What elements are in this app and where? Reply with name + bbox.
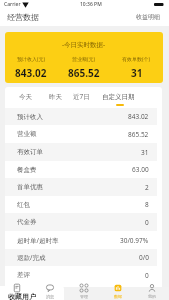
staticText: 首页 (13, 294, 21, 299)
button[interactable]: 代金券 (5, 213, 157, 231)
button[interactable]: 餐盒费 (5, 161, 157, 178)
staticText: 0 (145, 271, 149, 280)
staticText: 预计收入 (17, 113, 43, 121)
staticText: 843.02 (15, 66, 47, 80)
staticText: 红包 (17, 201, 30, 209)
staticText: 0/0 (139, 253, 149, 262)
button[interactable]: 首页 (0, 283, 33, 300)
staticText: 收益明细 (136, 13, 160, 21)
staticText: 63.00 (132, 165, 149, 174)
staticText: 近7日 (73, 92, 90, 101)
staticText: 有效单数(个) (122, 56, 151, 63)
staticText: 管理 (80, 294, 88, 299)
staticText: Carrier (4, 1, 21, 8)
staticText: 我的 (148, 294, 156, 299)
button[interactable]: 收益明细 (136, 13, 160, 21)
button[interactable]: 有效订单 (5, 143, 157, 161)
staticText: 退款/完成 (17, 253, 46, 262)
staticText: 数据 (114, 294, 122, 299)
button[interactable]: 昨天 (43, 87, 81, 108)
button[interactable]: 我的 (135, 283, 169, 300)
staticText: 31 (141, 148, 149, 157)
staticText: -今日实时数据- (62, 40, 106, 49)
button[interactable]: 管理 (67, 283, 101, 300)
staticText: 首单优惠 (17, 183, 43, 191)
staticText: 代金券 (17, 218, 37, 226)
staticText: 30/0.97% (120, 236, 149, 245)
staticText: 有效订单 (17, 148, 43, 156)
staticText: 经营数据 (7, 12, 39, 22)
button[interactable]: 预计收入 (5, 108, 157, 125)
staticText: 营业额(元) (72, 56, 96, 63)
staticText: 收藏用户 (8, 292, 36, 300)
staticText: 自定义日期 (102, 93, 135, 101)
staticText: 昨天 (49, 93, 62, 101)
button[interactable]: 首单优惠 (5, 178, 157, 196)
staticText: 差评 (17, 271, 30, 279)
button[interactable]: 近7日 (81, 87, 119, 108)
staticText: 营业额 (17, 130, 37, 138)
button[interactable]: 差评 (5, 266, 157, 284)
button[interactable]: 营业额 (5, 125, 157, 143)
staticText: 餐盒费 (17, 166, 37, 174)
staticText: 超时单/超时率 (17, 236, 59, 245)
staticText: 今天 (19, 93, 32, 101)
button[interactable]: 消息 (33, 283, 67, 300)
staticText: 865.52 (128, 130, 149, 139)
button[interactable]: 超时单/超时率 (5, 231, 157, 249)
staticText: 843.02 (128, 112, 149, 121)
staticText: 865.52 (68, 66, 100, 80)
staticText: 消息 (46, 294, 54, 299)
staticText: 31 (131, 66, 143, 80)
button[interactable]: 数据 (101, 283, 135, 300)
staticText: 8 (145, 200, 149, 209)
button[interactable]: 红包 (5, 196, 157, 213)
button[interactable]: 退款/完成 (5, 249, 157, 266)
staticText: 预计收入(元) (17, 56, 46, 63)
button[interactable]: 今天 (5, 87, 43, 108)
button[interactable]: 自定义日期 (119, 87, 157, 108)
staticText: 2 (145, 183, 149, 192)
staticText: 10:36 PM (80, 1, 102, 8)
staticText: 0 (145, 218, 149, 227)
